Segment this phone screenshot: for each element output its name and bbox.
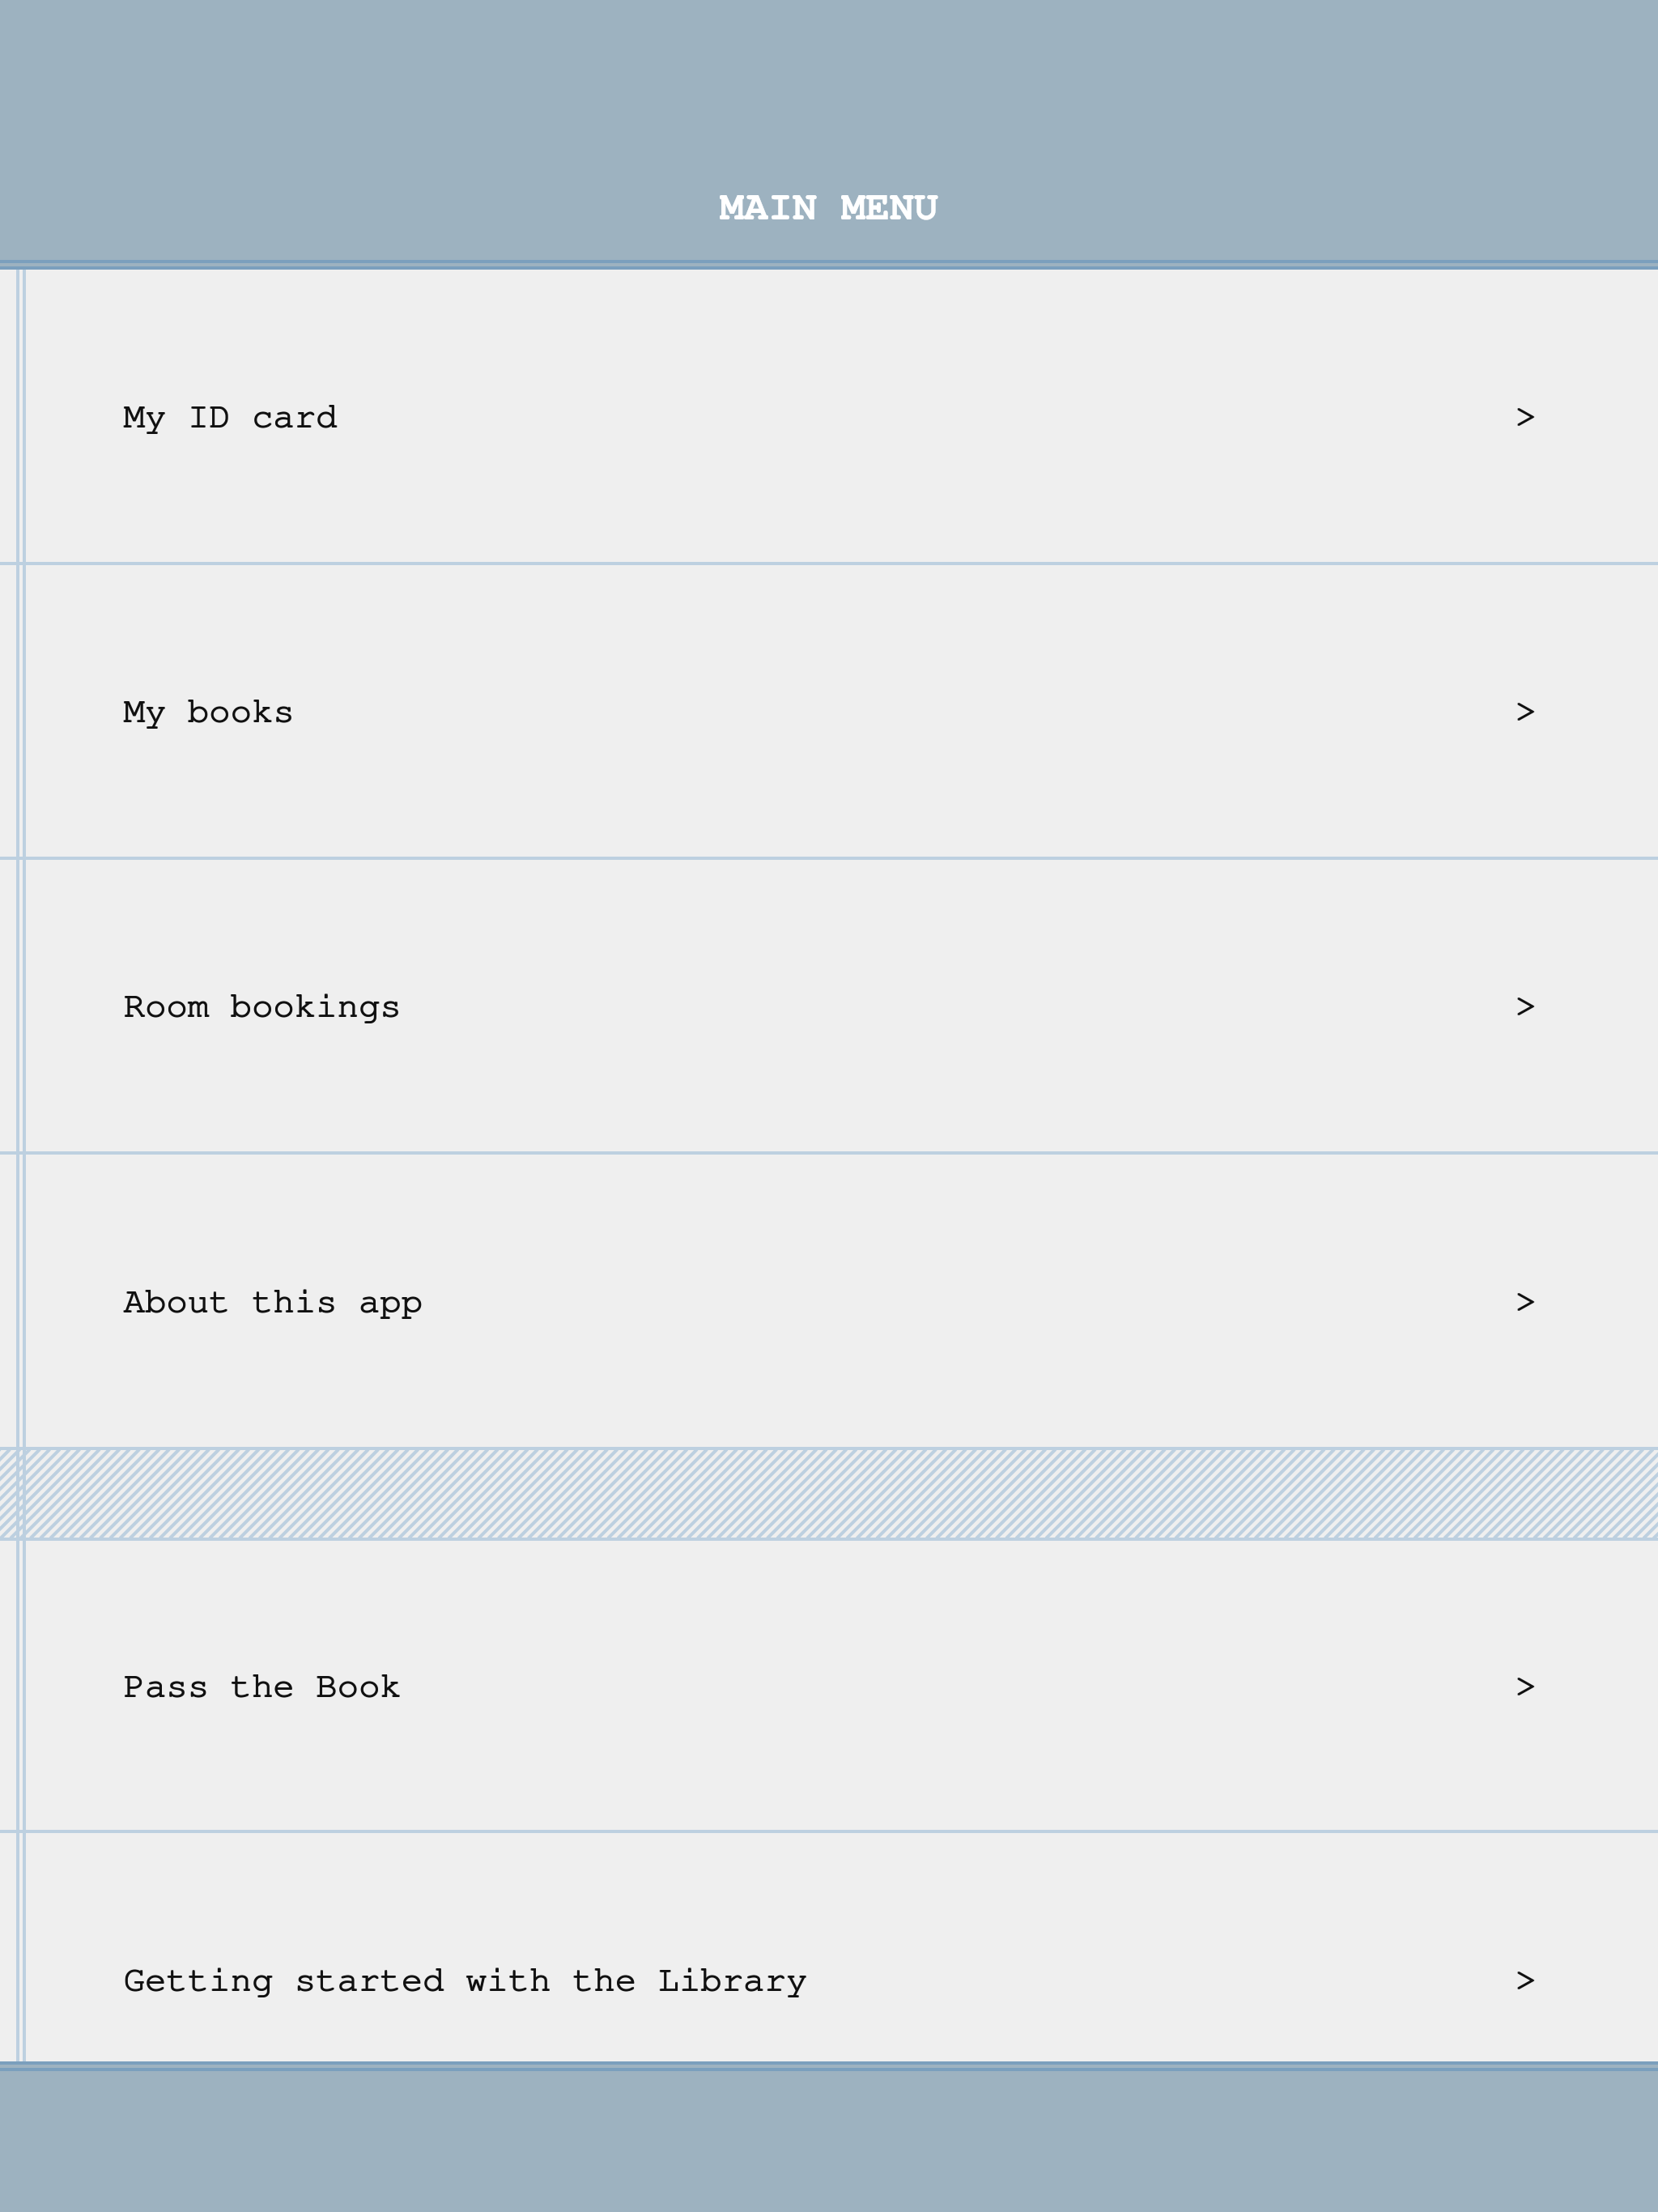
staticText: About this app — [123, 1283, 423, 1319]
staticText: > — [1515, 1283, 1537, 1319]
staticText: Getting started with the Library — [123, 1962, 807, 1997]
staticText: Pass the Book — [123, 1668, 402, 1704]
staticText: My books — [123, 693, 295, 729]
staticText: > — [1515, 1668, 1537, 1704]
button[interactable]: My books — [0, 565, 1658, 857]
button[interactable]: Getting started with the Library — [0, 1833, 1658, 2061]
staticText: MAIN MENU — [720, 187, 938, 228]
staticText: My ID card — [123, 398, 337, 434]
staticText: > — [1515, 988, 1537, 1023]
button[interactable]: About this app — [0, 1155, 1658, 1447]
staticText: Room bookings — [123, 988, 402, 1023]
button[interactable]: My ID card — [0, 270, 1658, 562]
staticText: > — [1515, 693, 1537, 729]
staticText: > — [1515, 1962, 1537, 1997]
staticText: > — [1515, 398, 1537, 434]
button[interactable]: Pass the Book — [0, 1541, 1658, 1830]
button[interactable]: Room bookings — [0, 860, 1658, 1151]
